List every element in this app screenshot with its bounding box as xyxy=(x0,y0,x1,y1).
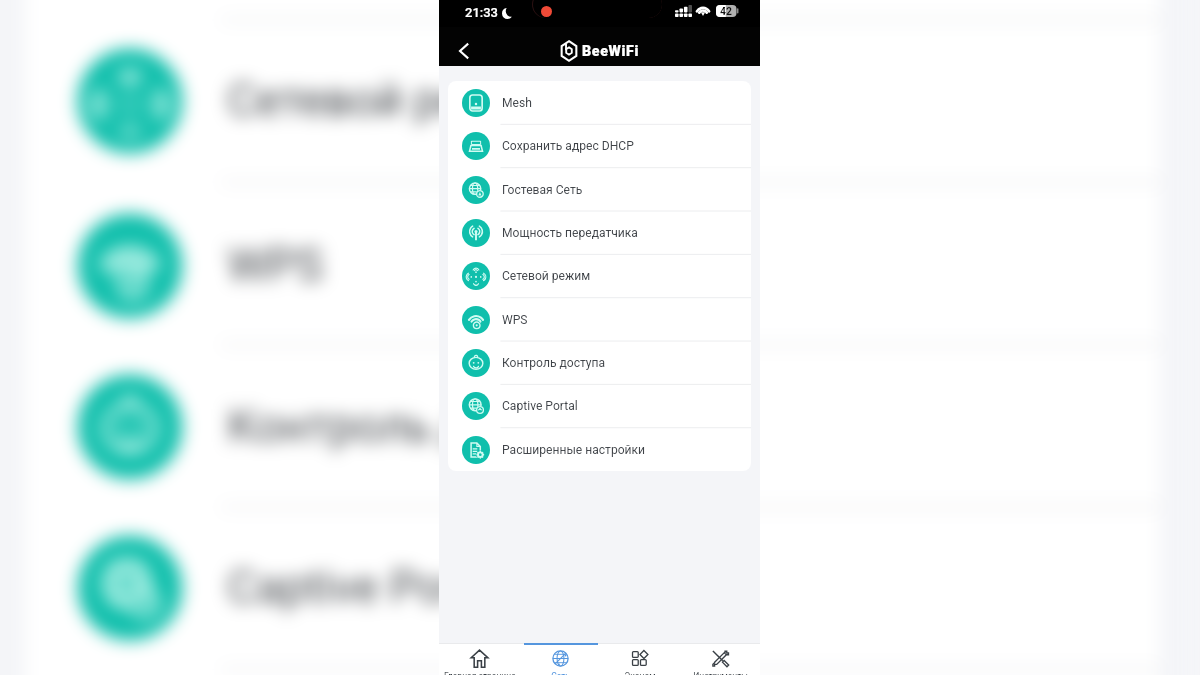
staticText: Эконом xyxy=(624,671,656,675)
button[interactable]: WPS xyxy=(25,183,1160,344)
button[interactable]: Mesh xyxy=(448,81,751,124)
button[interactable]: Мощность передатчика xyxy=(448,211,751,254)
button[interactable]: Главная страница xyxy=(439,645,520,675)
button[interactable]: Эконом xyxy=(600,645,680,675)
button[interactable]: WPS xyxy=(448,298,751,341)
button[interactable]: Контроль доступа xyxy=(448,341,751,384)
button[interactable]: Сетевой режим xyxy=(25,18,1160,180)
button[interactable]: Captive Portal xyxy=(448,384,751,427)
staticText: Мощность передатчика xyxy=(502,226,638,240)
staticText: Mesh xyxy=(502,96,532,110)
button[interactable]: Контроль доступа xyxy=(25,344,1160,506)
staticText: Сеть xyxy=(551,671,570,675)
staticText: WPS xyxy=(502,313,528,327)
staticText: Сохранить адрес DHCP xyxy=(502,139,634,153)
button[interactable]: Мощность передатчика xyxy=(25,0,1160,18)
staticText: Расширенные настройки xyxy=(502,443,646,457)
staticText: Сетевой режим xyxy=(227,75,561,127)
staticText: Captive Portal xyxy=(227,562,512,614)
staticText: Captive Portal xyxy=(502,399,578,413)
button[interactable]: Инструменты xyxy=(680,645,760,675)
staticText: Контроль доступа xyxy=(227,401,617,453)
button[interactable]: Сетевой режим xyxy=(448,254,751,297)
staticText: 42 xyxy=(720,5,732,17)
button[interactable]: Расширенные настройки xyxy=(25,670,1160,675)
button[interactable]: Captive Portal xyxy=(25,506,1160,667)
staticText: Главная страница xyxy=(444,671,516,675)
button[interactable]: Back xyxy=(452,39,476,63)
button[interactable]: Сеть xyxy=(520,645,600,675)
staticText: Инструменты xyxy=(693,671,748,675)
staticText: Гостевая Сеть xyxy=(502,183,583,197)
button[interactable]: Расширенные настройки xyxy=(448,428,751,471)
staticText: Контроль доступа xyxy=(502,356,606,370)
button[interactable]: Сохранить адрес DHCP xyxy=(448,124,751,167)
button[interactable]: Гостевая Сеть xyxy=(448,168,751,211)
staticText: WPS xyxy=(227,240,325,292)
staticText: Сетевой режим xyxy=(502,269,591,283)
staticText: 21:33 xyxy=(465,5,498,20)
staticText: BeeWiFi xyxy=(582,43,640,60)
